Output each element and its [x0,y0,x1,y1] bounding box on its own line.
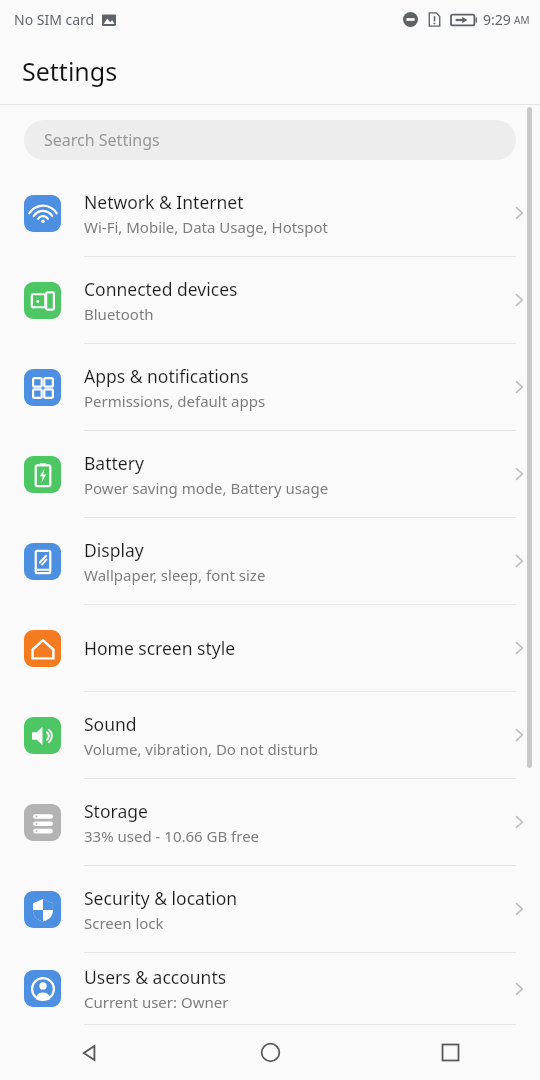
staticText: Permissions, default apps [84,391,266,411]
staticText: Storage [84,799,148,823]
staticText: Connected devices [84,277,238,301]
button[interactable]: Connected devices [0,257,540,343]
button[interactable]: Search Settings [24,120,516,160]
staticText: Power saving mode, Battery usage [84,478,329,498]
button[interactable]: Home [180,1025,360,1080]
button[interactable]: Recent apps [360,1025,540,1080]
staticText: Screen lock [84,913,164,933]
staticText: Battery [84,451,144,475]
staticText: Users & accounts [84,965,227,989]
button[interactable]: Display [0,518,540,604]
button[interactable]: Apps & notifications [0,344,540,430]
staticText: Bluetooth [84,304,154,324]
staticText: 33% used - 10.66 GB free [84,826,260,846]
staticText: Network & Internet [84,190,244,214]
staticText: Home screen style [84,636,236,660]
button[interactable]: Home screen style [0,605,540,691]
staticText: Apps & notifications [84,364,249,388]
button[interactable]: Network & Internet [0,170,540,256]
staticText: Volume, vibration, Do not disturb [84,739,318,759]
staticText: No SIM card [14,10,95,29]
staticText: Display [84,538,144,562]
button[interactable]: Battery [0,431,540,517]
button[interactable]: Security & location [0,866,540,952]
button[interactable]: Storage [0,779,540,865]
staticText: Settings [22,54,118,88]
button[interactable]: Sound [0,692,540,778]
staticText: Wi-Fi, Mobile, Data Usage, Hotspot [84,217,329,237]
staticText: Security & location [84,886,238,910]
staticText: AM [514,13,530,27]
staticText: Current user: Owner [84,992,229,1012]
button[interactable]: Users & accounts [0,953,540,1024]
staticText: Wallpaper, sleep, font size [84,565,266,585]
button[interactable]: Back [0,1025,180,1080]
staticText: Search Settings [44,129,160,151]
staticText: 9:29 [483,10,511,29]
staticText: Sound [84,712,137,736]
